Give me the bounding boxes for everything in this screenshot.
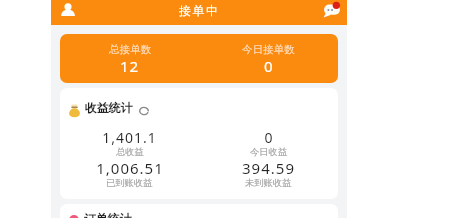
staticText: 订单统计 — [84, 212, 132, 218]
button[interactable]: Messages — [322, 0, 342, 20]
staticText: 0 — [264, 128, 274, 147]
staticText: 已到账收益 — [106, 177, 153, 189]
staticText: 未到账收益 — [245, 177, 292, 189]
staticText: 接单中 — [179, 3, 220, 18]
staticText: 0 — [264, 56, 274, 76]
staticText: 12 — [120, 56, 140, 76]
staticText: 1,401.1 — [102, 128, 157, 147]
staticText: 总接单数 — [109, 43, 151, 56]
staticText: 今日接单数 — [242, 43, 295, 56]
button[interactable]: Profile — [58, 0, 78, 20]
staticText: 收益统计 — [85, 101, 133, 116]
staticText: 总收益 — [116, 146, 144, 158]
button[interactable]: Refresh — [139, 106, 149, 116]
button[interactable]: 总接单数 — [60, 34, 338, 83]
staticText: 394.59 — [242, 158, 295, 178]
staticText: 今日收益 — [250, 146, 288, 158]
button[interactable]: 订单统计 — [60, 204, 338, 218]
staticText: 1,006.51 — [96, 158, 164, 178]
